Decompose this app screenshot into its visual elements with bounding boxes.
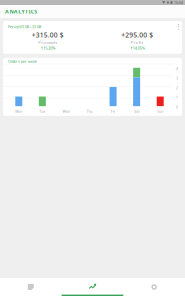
staticText: Proceeds	[38, 39, 57, 45]
staticText: 4	[176, 66, 178, 71]
staticText: Thu	[86, 109, 92, 114]
button[interactable]: Orders	[0, 278, 62, 296]
staticText: 0	[176, 105, 178, 109]
staticText: Tue	[39, 109, 45, 114]
staticText: Profit	[131, 39, 144, 45]
staticText: Sat	[134, 109, 139, 114]
staticText: Orders per week	[8, 59, 37, 64]
staticText: Fri	[111, 109, 115, 114]
staticText: ↑14.05%	[130, 45, 145, 51]
staticText: ANALYTICS	[5, 8, 37, 15]
staticText: Mon	[15, 109, 22, 114]
staticText: 2	[176, 85, 178, 90]
staticText: Sun	[157, 109, 163, 114]
staticText: +295.00 $	[121, 30, 153, 39]
staticText: ↑15.20%	[40, 45, 55, 51]
staticText: 1	[176, 95, 178, 100]
button[interactable]: More options	[175, 21, 182, 33]
staticText: 3	[176, 76, 178, 81]
staticText: Period 01.08 - 31.08	[8, 24, 41, 29]
button[interactable]: Analytics	[62, 278, 123, 296]
staticText: 16:04	[174, 0, 183, 5]
staticText: +315.00 $	[32, 30, 64, 39]
staticText: Wed	[62, 109, 69, 114]
button[interactable]: Settings	[123, 278, 185, 296]
